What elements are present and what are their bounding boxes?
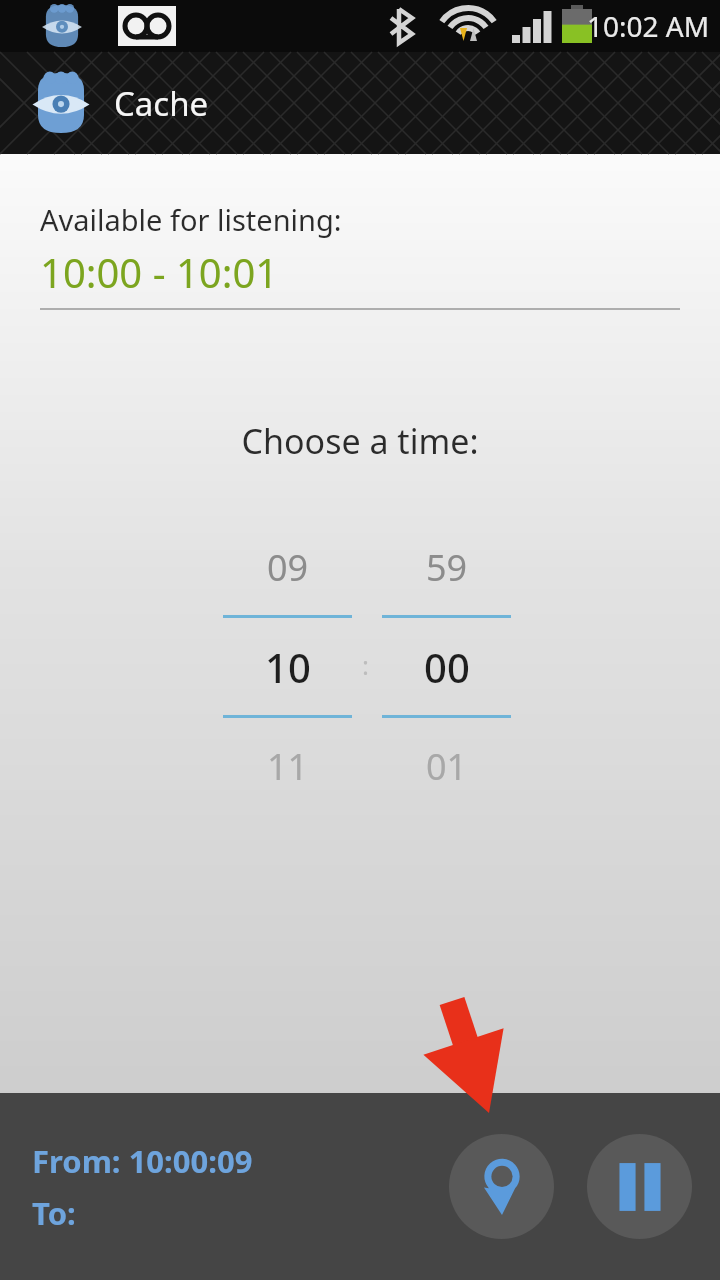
staticText: Cache — [114, 81, 209, 126]
staticText: 01 — [426, 742, 468, 791]
staticText: Choose a time: — [0, 418, 720, 464]
staticText: 10:00 - 10:01 — [40, 245, 279, 299]
button[interactable]: 09 — [223, 519, 352, 814]
staticText: Available for listening: — [40, 200, 342, 239]
staticText: 09 — [267, 543, 309, 592]
button[interactable]: Pause — [587, 1134, 692, 1239]
staticText: 10 — [265, 640, 311, 694]
button[interactable]: Set location — [449, 1134, 554, 1239]
staticText: 59 — [426, 543, 468, 592]
staticText: To: — [32, 1192, 76, 1234]
staticText: 00 — [424, 640, 470, 694]
button[interactable]: 59 — [382, 519, 511, 814]
staticText: 11 — [267, 742, 309, 791]
button[interactable]: Cache app icon — [30, 72, 92, 134]
staticText: From: 10:00:09 — [32, 1140, 253, 1182]
staticText: : — [362, 647, 369, 682]
staticText: 10:02 AM — [587, 7, 710, 45]
